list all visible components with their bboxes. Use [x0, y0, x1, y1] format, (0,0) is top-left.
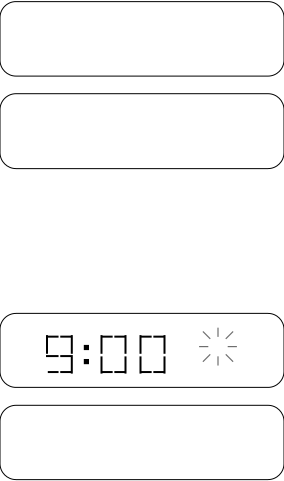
button[interactable]	[0, 313, 284, 387]
button[interactable]	[0, 94, 284, 169]
button[interactable]	[0, 405, 284, 480]
button[interactable]	[0, 2, 284, 76]
